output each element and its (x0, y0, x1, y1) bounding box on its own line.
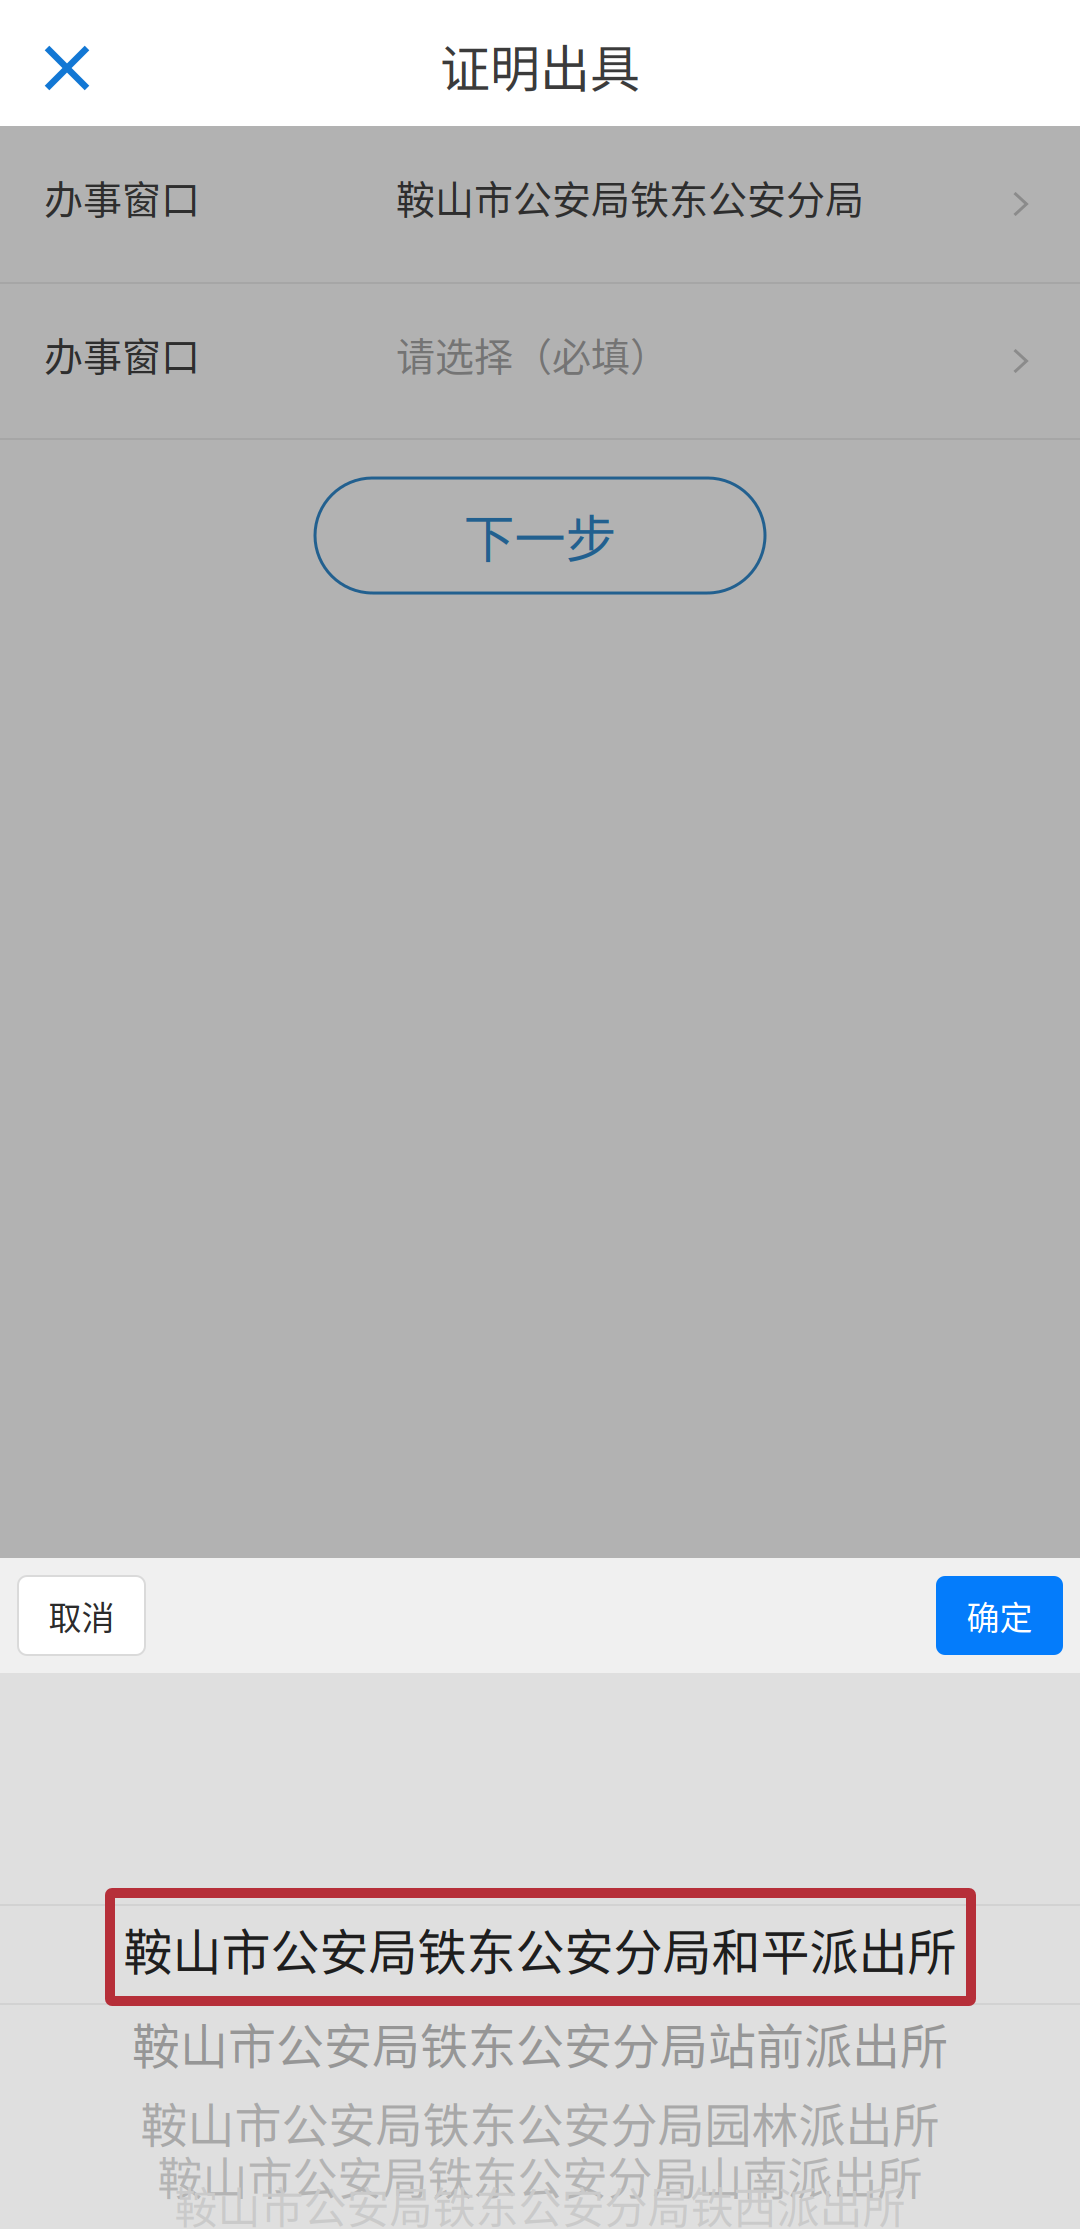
staticText: 请选择（必填） (396, 326, 669, 382)
button[interactable]: 确定 (936, 1576, 1063, 1655)
staticText: 鞍山市公安局铁东公安分局和平派出所 (123, 1913, 956, 1984)
staticText: 鞍山市公安局铁东公安分局铁西派出所 (174, 2174, 905, 2229)
button[interactable]: 关闭 (0, 0, 134, 126)
staticText: 办事窗口 (44, 169, 200, 225)
staticText: 取消 (48, 1592, 114, 1639)
staticText: 下一步 (463, 499, 616, 572)
staticText: 鞍山市公安局铁东公安分局园林派出所 (140, 2088, 939, 2156)
button[interactable]: 办事窗口 (0, 126, 1080, 282)
staticText: 办事窗口 (44, 326, 200, 382)
staticText: 鞍山市公安局铁东公安分局山南派出所 (157, 2143, 922, 2209)
button[interactable]: 办事窗口 (0, 284, 1080, 438)
staticText: 鞍山市公安局铁东公安分局站前派出所 (132, 2008, 948, 2078)
staticText: 鞍山市公安局铁东公安分局 (396, 169, 864, 225)
button[interactable]: 下一步 (315, 478, 765, 593)
staticText: 确定 (966, 1592, 1032, 1639)
button[interactable]: 取消 (18, 1576, 145, 1655)
staticText: 证明出具 (440, 29, 640, 102)
